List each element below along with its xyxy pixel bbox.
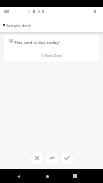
- button[interactable]: Next Date: [40, 52, 63, 59]
- button[interactable]: Partially correct: [46, 152, 58, 164]
- button[interactable]: Recents: [73, 174, 85, 183]
- staticText: Sample deck: [6, 23, 31, 29]
- button[interactable]: Correct: [61, 152, 73, 164]
- staticText: Next Date: [45, 53, 62, 58]
- button[interactable]: Back: [17, 175, 29, 183]
- button[interactable]: Home: [46, 175, 58, 183]
- button[interactable]: Incorrect: [31, 152, 43, 164]
- staticText: This card is due today!: [14, 39, 60, 45]
